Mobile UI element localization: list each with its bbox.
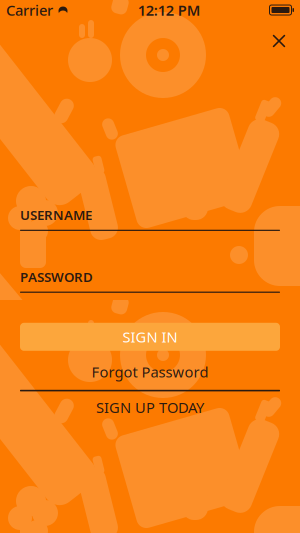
staticText: Forgot Password [91,362,208,382]
staticText: Carrier [6,0,53,20]
staticText: SIGN IN [122,327,177,347]
button[interactable]: SIGN IN [20,323,280,351]
staticText: SIGN UP TODAY [96,398,204,417]
button[interactable]: Close [266,24,300,58]
staticText: USERNAME [20,206,92,224]
button[interactable]: Forgot Password [20,364,280,380]
staticText: PASSWORD [20,268,93,286]
staticText: 12:12 PM [138,0,201,20]
button[interactable]: SIGN UP TODAY [20,399,280,415]
